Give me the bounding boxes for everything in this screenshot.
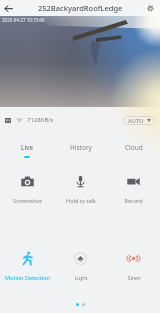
button[interactable]: Light <box>54 221 107 310</box>
button[interactable]: Siren <box>107 221 160 310</box>
staticText: 252BackyardRoofLedge <box>38 3 123 13</box>
staticText: Light <box>74 274 88 281</box>
button[interactable]: AUTO <box>123 116 155 125</box>
staticText: Live <box>21 143 34 152</box>
staticText: Motion Detection <box>5 274 50 281</box>
staticText: Screenshot <box>13 197 42 204</box>
staticText: AUTO <box>128 117 144 125</box>
button[interactable]: Hold to talk <box>54 158 107 221</box>
staticText: Hold to talk <box>66 197 96 204</box>
staticText: Record <box>124 197 143 204</box>
button[interactable]: History <box>54 133 107 158</box>
button[interactable]: Back <box>2 2 15 15</box>
button[interactable]: Record <box>107 158 160 221</box>
staticText: 2025-04-27 10:15:46 <box>2 17 45 23</box>
button[interactable]: Motion Detection <box>0 221 54 310</box>
staticText: 7128KB/s <box>27 116 54 124</box>
button[interactable]: Screenshot <box>0 158 54 221</box>
button[interactable]: Live <box>0 133 54 158</box>
button[interactable]: Settings <box>144 2 156 14</box>
staticText: Siren <box>127 274 141 281</box>
staticText: Cloud <box>125 143 143 152</box>
button[interactable]: Cloud <box>107 133 160 158</box>
staticText: History <box>70 143 92 152</box>
